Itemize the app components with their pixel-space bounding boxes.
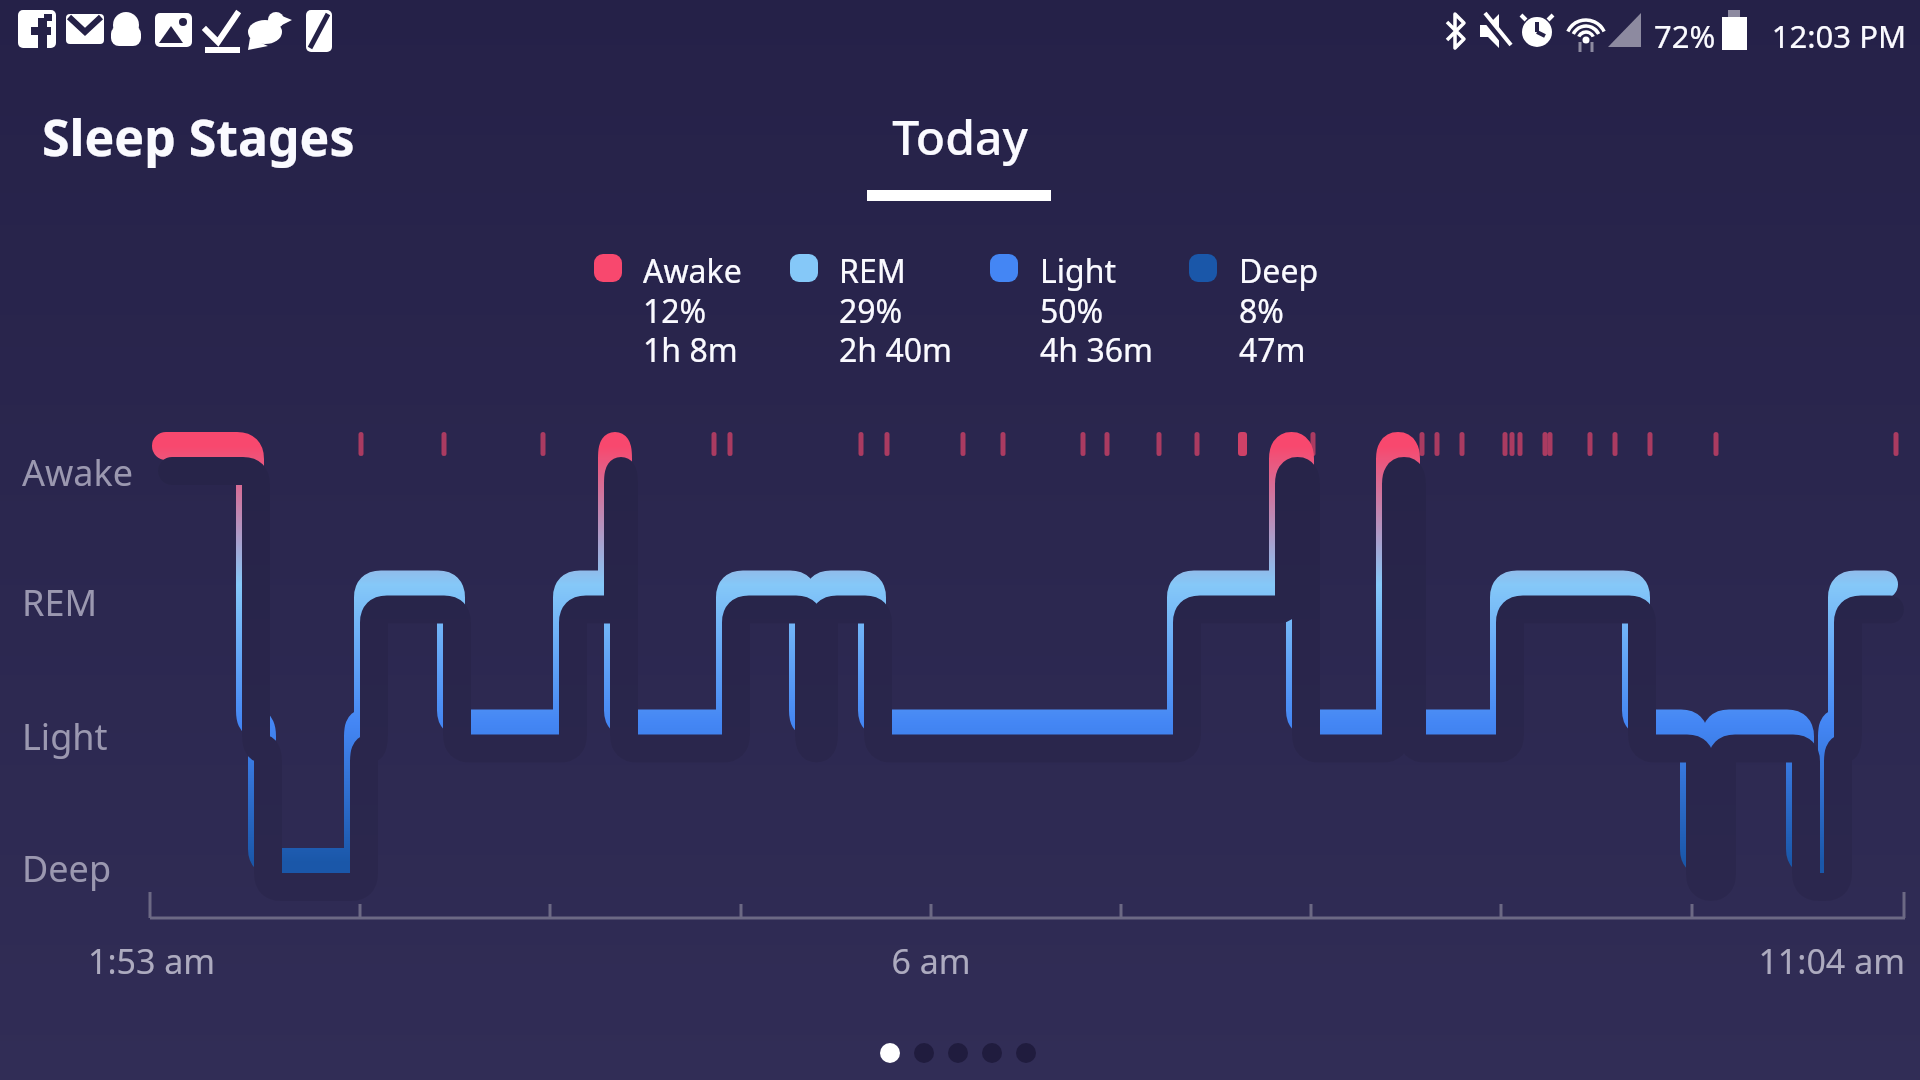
staticText: 1h 8m <box>643 328 738 372</box>
staticText: Light <box>22 712 108 761</box>
staticText: 12% <box>643 289 707 333</box>
staticText: Sleep Stages <box>42 103 355 171</box>
staticText: 1:53 am <box>88 938 216 984</box>
staticText: 50% <box>1040 289 1104 333</box>
staticText: Deep <box>1239 249 1319 293</box>
staticText: 47m <box>1239 328 1306 372</box>
button[interactable] <box>874 1037 1044 1069</box>
staticText: 6 am <box>869 938 993 984</box>
staticText: Light <box>1040 249 1117 293</box>
staticText: REM <box>839 249 906 293</box>
staticText: 72% <box>1654 15 1716 57</box>
staticText: REM <box>22 578 98 627</box>
staticText: 29% <box>839 289 903 333</box>
staticText: 12:03 PM <box>1700 15 1906 57</box>
staticText: 11:04 am <box>1700 938 1905 984</box>
staticText: Awake <box>22 448 134 497</box>
staticText: 8% <box>1239 289 1284 333</box>
staticText: Deep <box>22 844 112 893</box>
staticText: 2h 40m <box>839 328 952 372</box>
staticText: 4h 36m <box>1040 328 1153 372</box>
staticText: Awake <box>643 249 742 293</box>
button[interactable]: Today <box>860 104 1060 169</box>
